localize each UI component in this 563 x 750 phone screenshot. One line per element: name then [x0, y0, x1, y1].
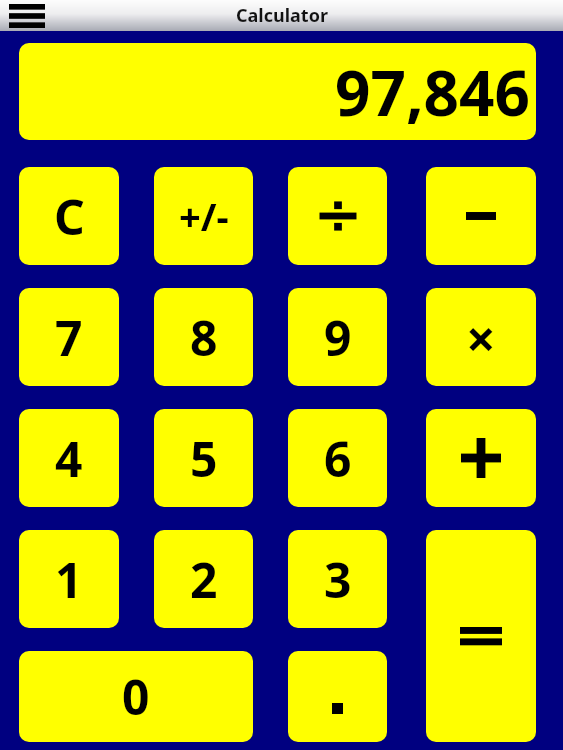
button[interactable]: 9 [288, 288, 387, 386]
staticText: 8 [190, 305, 218, 370]
button[interactable]: 6 [288, 409, 387, 507]
button[interactable]: Plus [426, 409, 536, 507]
button[interactable]: +/- [154, 167, 253, 265]
button[interactable]: 4 [19, 409, 119, 507]
button[interactable]: 8 [154, 288, 253, 386]
button[interactable]: Menu [6, 0, 48, 31]
button[interactable]: 0 [19, 651, 253, 742]
button[interactable]: 5 [154, 409, 253, 507]
button[interactable]: 3 [288, 530, 387, 628]
staticText: 1 [55, 547, 83, 612]
staticText: 3 [324, 547, 352, 612]
button[interactable]: Multiply [426, 288, 536, 386]
button[interactable]: 1 [19, 530, 119, 628]
staticText: 5 [190, 426, 218, 491]
button[interactable]: Minus [426, 167, 536, 265]
staticText: C [54, 184, 85, 249]
button[interactable]: Equals [426, 530, 536, 742]
button[interactable]: Decimal point [288, 651, 387, 742]
staticText: 2 [190, 547, 218, 612]
staticText: +/- [179, 190, 229, 242]
button[interactable]: 2 [154, 530, 253, 628]
staticText: Calculator [236, 3, 328, 28]
button[interactable]: 97,846 [19, 43, 536, 140]
staticText: 6 [324, 426, 352, 491]
button[interactable]: C [19, 167, 119, 265]
button[interactable]: Divide [288, 167, 387, 265]
staticText: 97,846 [335, 50, 530, 134]
staticText: 7 [55, 305, 83, 370]
staticText: × [466, 302, 496, 373]
staticText: 9 [324, 305, 352, 370]
staticText: 0 [122, 664, 150, 729]
staticText: 4 [55, 426, 83, 491]
button[interactable]: 7 [19, 288, 119, 386]
